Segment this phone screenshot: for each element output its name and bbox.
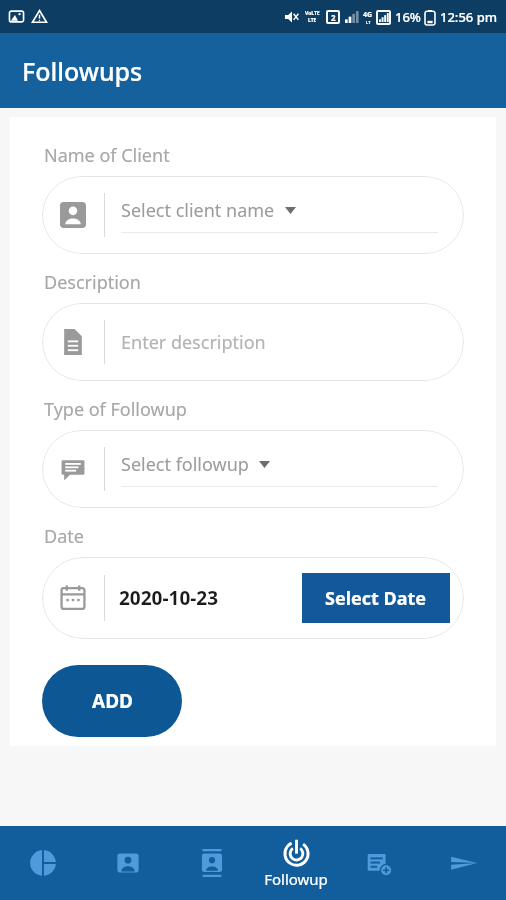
button[interactable]: ADD <box>42 665 182 737</box>
button[interactable]: Select followup <box>42 430 464 508</box>
button[interactable]: Contacts <box>170 826 254 900</box>
button[interactable]: Select Date <box>302 573 450 623</box>
staticText: Followups <box>22 54 143 88</box>
button[interactable]: Send <box>422 826 506 900</box>
staticText: Followup <box>264 869 328 889</box>
button[interactable]: Dashboard <box>0 826 85 900</box>
staticText: Select client name <box>121 198 275 223</box>
staticText: Date <box>44 524 84 549</box>
staticText: 2020-10-23 <box>119 585 302 611</box>
staticText: Select followup <box>121 452 249 477</box>
staticText: 2 <box>331 12 336 23</box>
button[interactable]: Followup <box>254 826 338 900</box>
staticText: 12:56 pm <box>440 8 498 26</box>
staticText: ADD <box>92 688 133 714</box>
staticText: Select Date <box>325 586 427 611</box>
button[interactable]: Enter description <box>42 303 464 381</box>
staticText: Name of Client <box>44 143 170 168</box>
staticText: VoLTE <box>305 10 320 17</box>
button[interactable]: 2020-10-23 <box>42 557 464 639</box>
staticText: LTE <box>308 17 317 24</box>
staticText: Enter description <box>121 330 266 355</box>
staticText: 16% <box>395 8 421 26</box>
staticText: 4G <box>363 10 373 20</box>
staticText: LT <box>366 20 371 25</box>
staticText: Type of Followup <box>44 397 187 422</box>
button[interactable]: Clients <box>85 826 170 900</box>
button[interactable]: Select client name <box>42 176 464 254</box>
button[interactable]: New note <box>338 826 422 900</box>
staticText: Description <box>44 270 141 295</box>
